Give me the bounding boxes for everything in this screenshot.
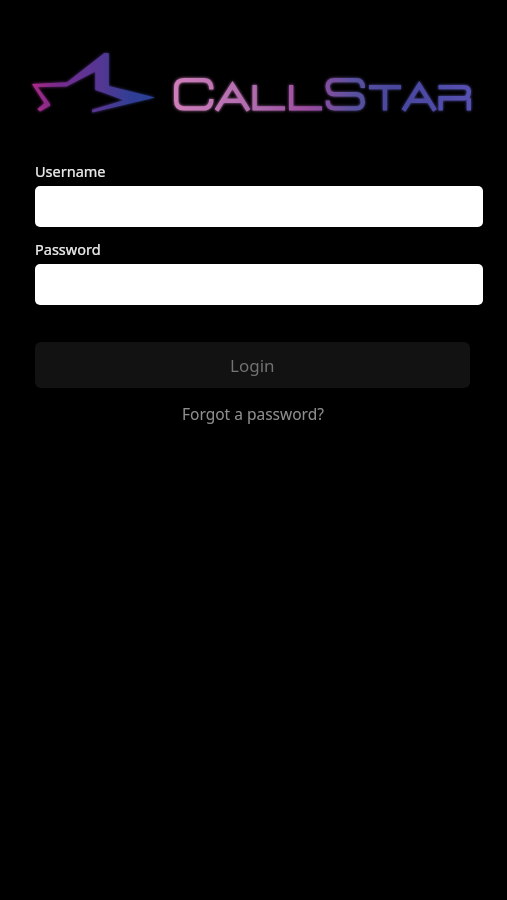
button[interactable]: Login: [35, 342, 470, 388]
staticText: Password: [35, 239, 101, 259]
button[interactable]: [35, 186, 483, 227]
button[interactable]: [35, 264, 483, 305]
button[interactable]: Forgot a password?: [182, 403, 324, 424]
staticText: Login: [230, 354, 275, 377]
staticText: Username: [35, 161, 106, 181]
